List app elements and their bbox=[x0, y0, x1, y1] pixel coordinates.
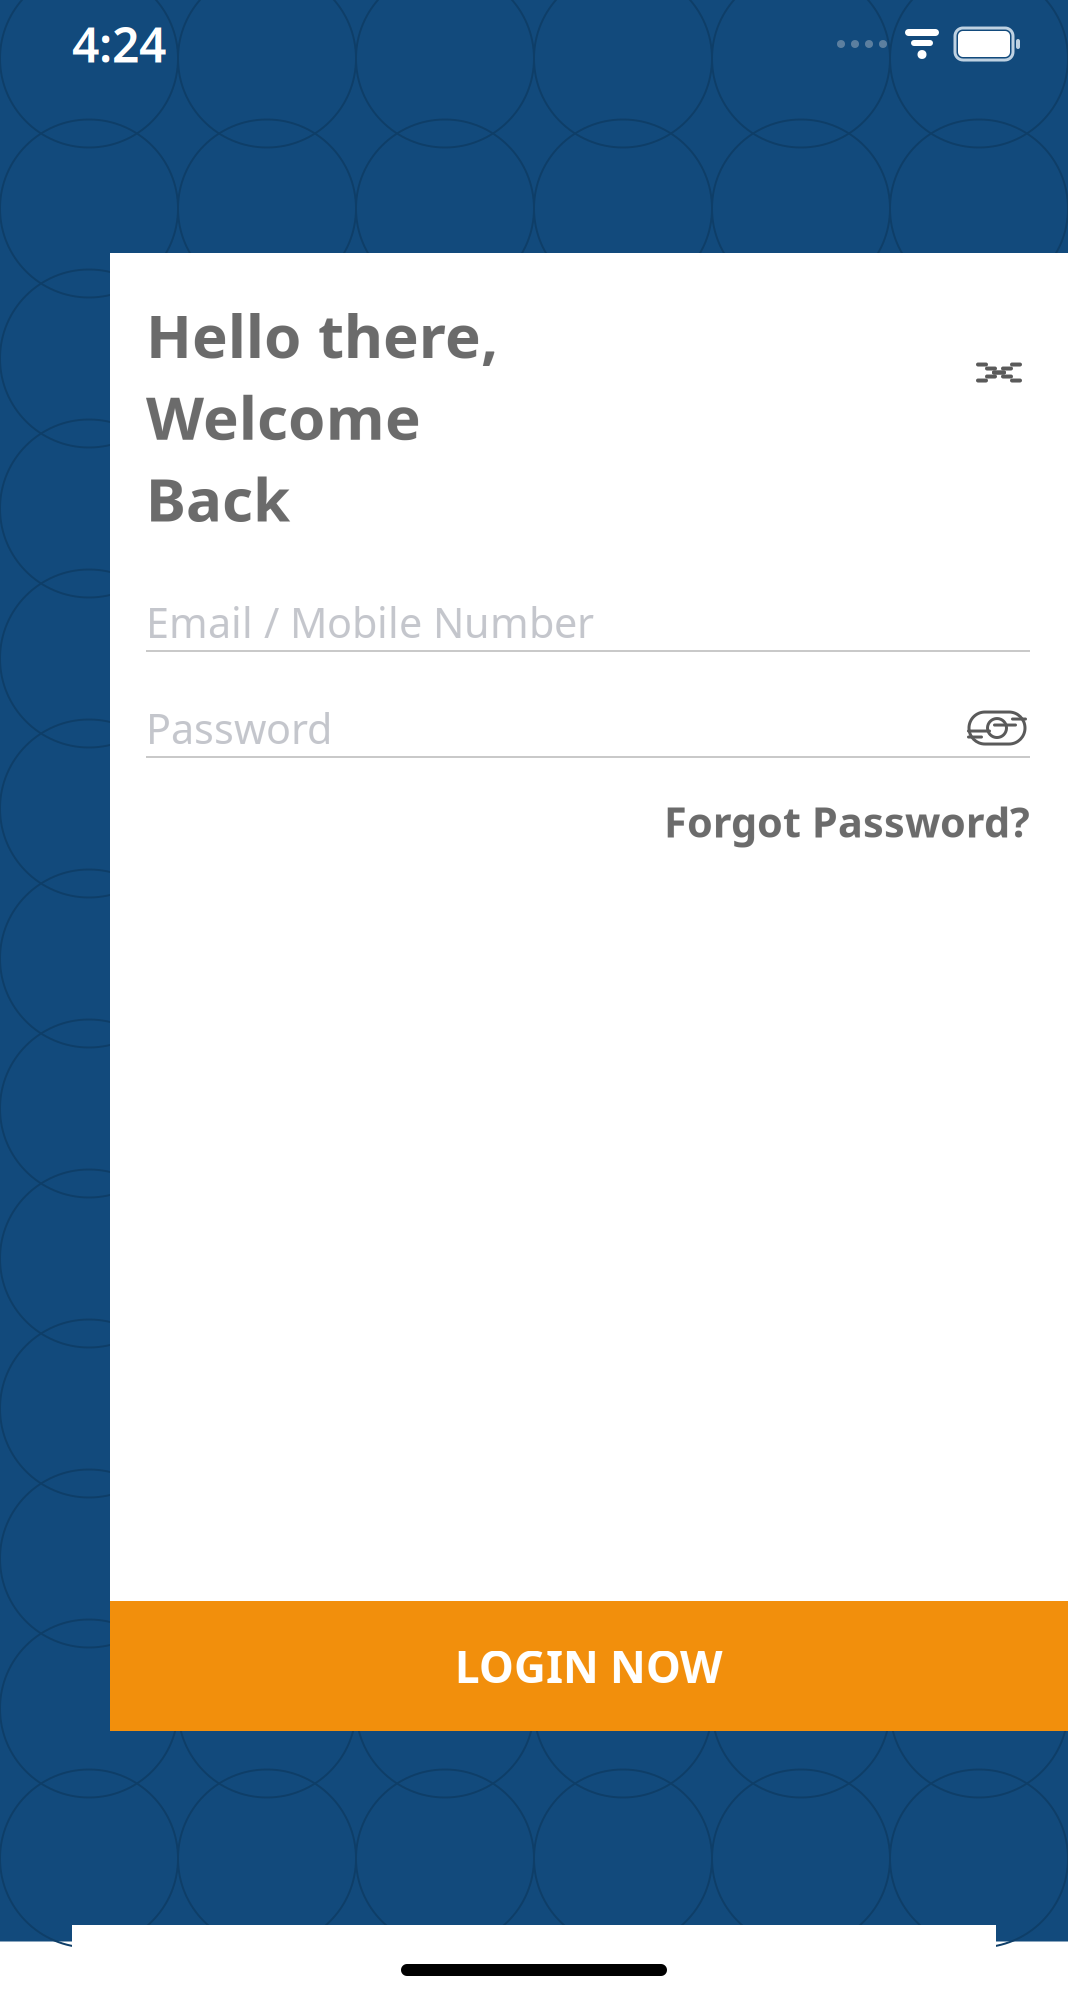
button[interactable]: Forgot Password? bbox=[664, 788, 1030, 855]
staticText: Back bbox=[146, 458, 290, 538]
staticText: 4:24 bbox=[72, 12, 166, 76]
staticText: LOGIN NOW bbox=[455, 1637, 723, 1695]
staticText: Forgot Password? bbox=[664, 794, 1030, 849]
button[interactable]: LOGIN NOW bbox=[110, 1601, 1068, 1731]
staticText: Welcome bbox=[146, 377, 421, 456]
button[interactable]: Show password bbox=[964, 704, 1030, 752]
staticText: Password bbox=[146, 701, 332, 755]
button[interactable]: Close bbox=[968, 341, 1030, 403]
staticText: Don't have an account? bbox=[276, 1614, 739, 1669]
staticText: Email / Mobile Number bbox=[146, 595, 594, 649]
staticText: Hello there, bbox=[146, 295, 498, 375]
button[interactable]: Don't have an account? bbox=[146, 1604, 1030, 1679]
